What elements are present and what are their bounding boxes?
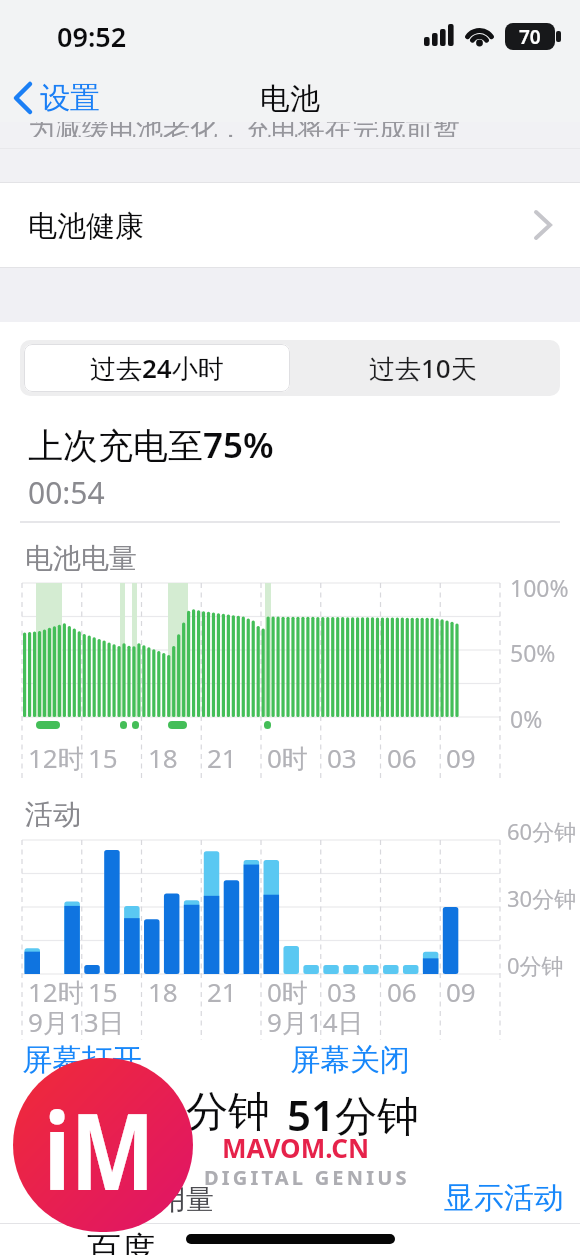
staticText: iM — [44, 1078, 155, 1221]
staticText: 60分钟 — [507, 816, 577, 846]
staticText: 51分钟 — [287, 1086, 420, 1143]
staticText: 15 — [88, 974, 118, 1009]
staticText: 06 — [387, 974, 417, 1009]
staticText: 00:54 — [28, 472, 105, 513]
staticText: 电池用量 — [102, 1182, 214, 1217]
staticText: 100% — [510, 572, 569, 603]
staticText: 分钟 — [186, 1086, 270, 1139]
button[interactable]: 显示活动 — [0, 0, 120, 38]
staticText: 百度 — [87, 1228, 155, 1255]
staticText: 12时 — [28, 974, 84, 1010]
staticText: 9月14日 — [267, 1004, 364, 1040]
staticText: 上次充电至75% — [28, 421, 274, 469]
staticText: 03 — [327, 740, 357, 775]
button[interactable]: 过去10天 — [290, 344, 556, 392]
staticText: 过去24小时 — [90, 350, 224, 386]
staticText: 50% — [510, 637, 556, 668]
button[interactable]: 电池健康 — [0, 183, 580, 268]
staticText: 70 — [519, 24, 541, 50]
staticText: 15 — [88, 740, 118, 775]
staticText: 09 — [446, 974, 476, 1009]
staticText: 电池电量 — [25, 541, 137, 576]
button[interactable]: 屏幕打开 — [0, 0, 120, 38]
staticText: 过去10天 — [369, 350, 477, 386]
staticText: DIGITAL GENIUS — [204, 1164, 410, 1191]
staticText: 电池健康 — [28, 208, 144, 245]
staticText: 0时 — [267, 740, 308, 776]
staticText: 09 — [446, 740, 476, 775]
staticText: 21 — [207, 974, 237, 1009]
button[interactable]: 设置 — [8, 76, 128, 120]
staticText: 0% — [510, 703, 543, 734]
staticText: 06 — [387, 740, 417, 775]
staticText: 18 — [148, 974, 178, 1009]
staticText: 30分钟 — [507, 883, 577, 913]
staticText: 03 — [327, 974, 357, 1009]
staticText: 活动 — [25, 797, 81, 832]
staticText: 0时 — [267, 974, 308, 1010]
staticText: 设置 — [40, 79, 100, 117]
staticText: MAVOM.CN — [222, 1130, 370, 1165]
staticText: 9月13日 — [28, 1004, 125, 1040]
staticText: 12时 — [28, 740, 84, 776]
button[interactable]: 屏幕关闭 — [0, 0, 120, 38]
staticText: 0分钟 — [507, 950, 564, 980]
staticText: 18 — [148, 740, 178, 775]
staticText: 21 — [207, 740, 237, 775]
staticText: 09:52 — [57, 18, 127, 55]
staticText: 电池 — [260, 80, 320, 118]
staticText: 为减缓电池老化，充电将在完成前暂停。 — [28, 122, 470, 137]
button[interactable]: 过去24小时 — [24, 344, 290, 392]
